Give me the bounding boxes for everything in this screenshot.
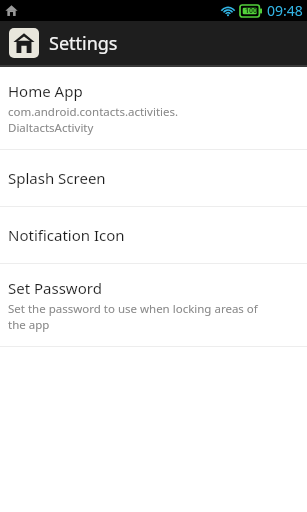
staticText: 09:48	[267, 1, 303, 20]
staticText: com.android.contacts.activities. Dialtac…	[8, 104, 179, 135]
button[interactable]: Splash Screen	[0, 150, 307, 206]
staticText: Set the password to use when locking are…	[8, 301, 258, 332]
staticText: Home App	[8, 81, 83, 101]
staticText: Splash Screen	[8, 168, 106, 188]
button[interactable]: Set Password	[0, 264, 307, 346]
staticText: Notification Icon	[8, 225, 125, 245]
staticText: Settings	[49, 31, 118, 56]
button[interactable]: Notification Icon	[0, 207, 307, 263]
button[interactable]: Settings	[0, 21, 307, 65]
staticText: 100	[245, 6, 258, 16]
button[interactable]: Home App	[0, 67, 307, 149]
staticText: Set Password	[8, 278, 102, 298]
